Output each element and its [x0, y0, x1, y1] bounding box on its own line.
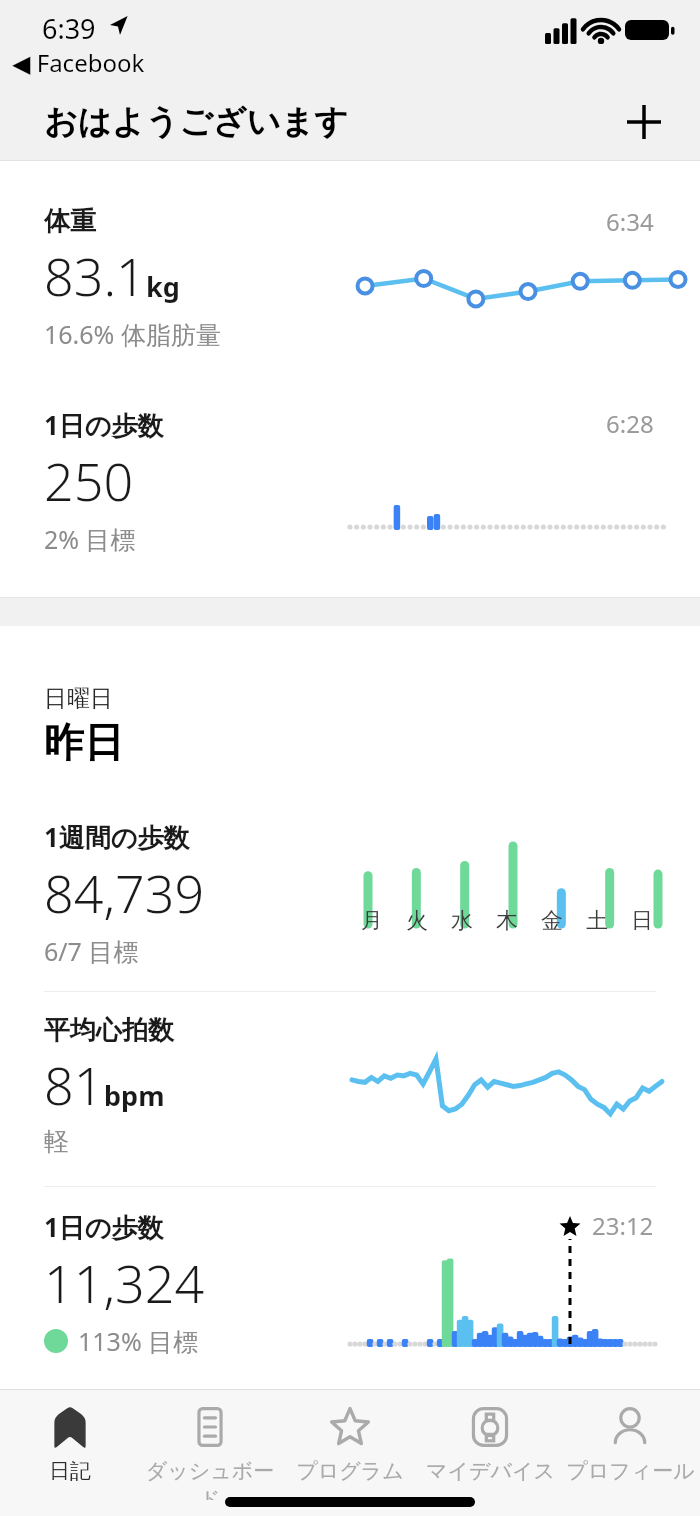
staticText: 113% 目標 [78, 1324, 199, 1358]
button[interactable]: 平均心拍数 [0, 992, 700, 1186]
staticText: 6:34 [606, 205, 654, 238]
other: 日記 [47, 1404, 93, 1450]
staticText: 日 [631, 907, 653, 935]
staticText: 1日の歩数 [44, 1209, 164, 1245]
staticText: 昨日 [44, 717, 124, 767]
staticText: おはようございます [44, 101, 348, 143]
button[interactable]: 1日の歩数 [0, 389, 700, 597]
staticText: bpm [104, 1077, 165, 1114]
other: マイデバイス [467, 1404, 513, 1450]
staticText: 1週間の歩数 [44, 819, 190, 855]
button[interactable]: ダッシュボード [140, 1390, 280, 1500]
staticText: 火 [406, 907, 428, 935]
staticText: 6:28 [606, 407, 654, 440]
staticText: 月 [361, 907, 383, 935]
staticText: 6/7 目標 [44, 934, 139, 968]
staticText: 16.6% 体脂肪量 [44, 317, 221, 351]
button[interactable]: プロフィール [560, 1390, 700, 1500]
staticText: ◀ Facebook [12, 46, 145, 79]
button[interactable]: 1日の歩数 [0, 1187, 700, 1389]
staticText: 平均心拍数 [44, 1014, 174, 1047]
staticText: 11,324 [44, 1247, 205, 1318]
other: ダッシュボード [187, 1404, 233, 1450]
staticText: 体重 [44, 205, 96, 238]
staticText: 6:39 [42, 10, 96, 47]
staticText: 2% 目標 [44, 522, 136, 556]
staticText: プログラム [296, 1458, 404, 1484]
staticText: kg [146, 268, 180, 305]
staticText: 23:12 [592, 1209, 654, 1242]
staticText: 土 [586, 907, 608, 935]
staticText: 83.1 [44, 240, 146, 311]
staticText: 1日の歩数 [44, 407, 164, 443]
staticText: 250 [44, 445, 134, 516]
staticText: 金 [541, 907, 563, 935]
other: プロフィール [607, 1404, 653, 1450]
staticText: 木 [496, 907, 518, 935]
staticText: プロフィール [566, 1458, 695, 1484]
staticText: マイデバイス [426, 1458, 555, 1484]
button[interactable]: プログラム [280, 1390, 420, 1500]
button[interactable]: 日記 [0, 1390, 140, 1500]
staticText: 水 [451, 907, 473, 935]
staticText: 日記 [49, 1458, 91, 1484]
staticText: 84,739 [44, 857, 205, 928]
button[interactable]: 体重 [0, 161, 700, 389]
staticText: 81 [44, 1049, 104, 1120]
staticText: 軽 [44, 1126, 69, 1157]
staticText: ダッシュボード [140, 1458, 280, 1500]
other: プログラム [327, 1404, 373, 1450]
button[interactable]: マイデバイス [420, 1390, 560, 1500]
button[interactable]: Add [616, 94, 672, 150]
button[interactable]: 1週間の歩数 [0, 819, 700, 991]
staticText: 日曜日 [44, 684, 113, 713]
